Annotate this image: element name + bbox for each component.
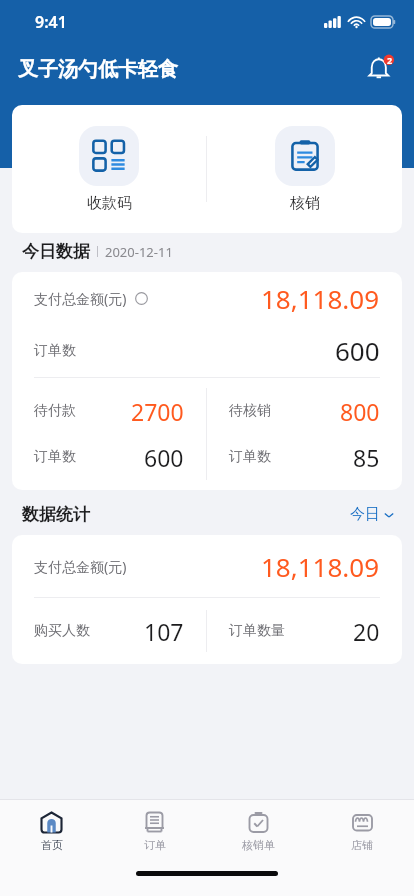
staticText: 今日 bbox=[350, 505, 380, 524]
staticText: 待核销 bbox=[229, 402, 271, 420]
staticText: 85 bbox=[353, 442, 380, 473]
staticText: 600 bbox=[144, 442, 184, 473]
staticText: 107 bbox=[144, 616, 184, 647]
button[interactable]: 今日 bbox=[350, 505, 394, 524]
staticText: 20 bbox=[353, 616, 380, 647]
button[interactable]: 订单 bbox=[103, 800, 206, 862]
staticText: 首页 bbox=[41, 838, 63, 852]
button[interactable]: Notifications bbox=[358, 47, 402, 91]
staticText: 订单数 bbox=[229, 448, 271, 466]
staticText: 核销 bbox=[290, 194, 320, 213]
staticText: 订单数 bbox=[34, 342, 76, 360]
staticText: 支付总金额(元) bbox=[34, 289, 127, 308]
button[interactable]: 核销 bbox=[207, 105, 402, 233]
staticText: 核销单 bbox=[242, 838, 275, 852]
staticText: 支付总金额(元) bbox=[34, 557, 127, 576]
staticText: 600 bbox=[335, 333, 380, 368]
staticText: 购买人数 bbox=[34, 622, 90, 640]
staticText: 店铺 bbox=[351, 838, 373, 852]
staticText: 2700 bbox=[131, 396, 184, 427]
staticText: 订单 bbox=[144, 838, 166, 852]
staticText: 订单数 bbox=[34, 448, 76, 466]
staticText: 收款码 bbox=[87, 194, 132, 213]
staticText: 2020-12-11 bbox=[105, 243, 173, 261]
staticText: 2 bbox=[387, 54, 393, 66]
button[interactable]: 核销单 bbox=[206, 800, 310, 862]
staticText: 18,118.09 bbox=[261, 549, 380, 584]
staticText: 叉子汤勺低卡轻食 bbox=[18, 57, 178, 82]
button[interactable]: Info bbox=[135, 292, 148, 305]
button[interactable]: 收款码 bbox=[12, 105, 206, 233]
staticText: 800 bbox=[340, 396, 380, 427]
staticText: 9:41 bbox=[35, 11, 67, 33]
staticText: 订单数量 bbox=[229, 622, 285, 640]
button[interactable]: 首页 bbox=[0, 800, 103, 862]
button[interactable]: 店铺 bbox=[310, 800, 414, 862]
staticText: 待付款 bbox=[34, 402, 76, 420]
staticText: 18,118.09 bbox=[261, 281, 380, 316]
staticText: 今日数据 bbox=[22, 241, 90, 262]
staticText: 数据统计 bbox=[22, 504, 90, 525]
